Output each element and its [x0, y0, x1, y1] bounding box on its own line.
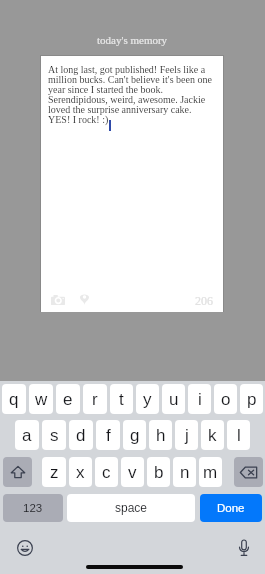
staticText: p [247, 390, 257, 409]
button[interactable]: a [15, 420, 39, 450]
staticText: j [185, 426, 189, 445]
button[interactable]: t [110, 384, 133, 414]
button[interactable]: e [56, 384, 80, 414]
staticText: Done [217, 502, 245, 515]
staticText: h [156, 426, 166, 445]
button[interactable]: Emoji keyboard [17, 540, 33, 556]
button[interactable]: Dictation [236, 540, 252, 556]
button[interactable]: Shift [3, 457, 32, 487]
button[interactable]: r [83, 384, 107, 414]
button[interactable]: space [67, 494, 195, 522]
staticText: w [35, 390, 48, 409]
staticText: m [203, 463, 218, 482]
staticText: f [106, 426, 111, 445]
button[interactable]: Backspace [234, 457, 263, 487]
staticText: r [92, 390, 98, 409]
button[interactable]: j [175, 420, 198, 450]
staticText: d [76, 426, 86, 445]
button[interactable]: q [2, 384, 26, 414]
staticText: n [180, 463, 190, 482]
button[interactable]: i [188, 384, 211, 414]
button[interactable]: c [95, 457, 118, 487]
staticText: c [102, 463, 111, 482]
button[interactable]: g [123, 420, 146, 450]
button[interactable]: v [121, 457, 144, 487]
staticText: s [50, 426, 59, 445]
button[interactable]: m [199, 457, 222, 487]
staticText: e [63, 390, 73, 409]
button[interactable]: 123 [3, 494, 63, 522]
staticText: l [237, 426, 241, 445]
button[interactable]: n [173, 457, 196, 487]
button[interactable]: d [69, 420, 93, 450]
staticText: k [208, 426, 217, 445]
button[interactable]: h [149, 420, 172, 450]
staticText: v [128, 463, 137, 482]
button[interactable]: w [29, 384, 53, 414]
staticText: today's memory [97, 34, 168, 46]
button[interactable]: Add photo [49, 291, 67, 309]
staticText: o [221, 390, 231, 409]
button[interactable]: p [240, 384, 263, 414]
staticText: i [198, 390, 202, 409]
staticText: b [154, 463, 164, 482]
button[interactable]: y [136, 384, 159, 414]
staticText: g [130, 426, 140, 445]
button[interactable]: k [201, 420, 224, 450]
staticText: 206 [195, 294, 213, 307]
button[interactable]: z [42, 457, 66, 487]
staticText: z [50, 463, 59, 482]
button[interactable]: b [147, 457, 170, 487]
staticText: u [169, 390, 179, 409]
staticText: q [9, 390, 19, 409]
staticText: t [119, 390, 124, 409]
button[interactable]: f [96, 420, 120, 450]
button[interactable]: Done [200, 494, 262, 522]
staticText: x [76, 463, 85, 482]
button[interactable]: Add location [75, 291, 93, 309]
staticText: At long last, got published! Feels like … [48, 64, 217, 125]
staticText: a [22, 426, 32, 445]
button[interactable]: l [227, 420, 250, 450]
button[interactable]: u [162, 384, 185, 414]
button[interactable]: x [69, 457, 92, 487]
button[interactable]: o [214, 384, 237, 414]
button[interactable]: s [42, 420, 66, 450]
staticText: space [115, 501, 148, 514]
staticText: y [143, 390, 152, 409]
staticText: 123 [23, 502, 43, 515]
